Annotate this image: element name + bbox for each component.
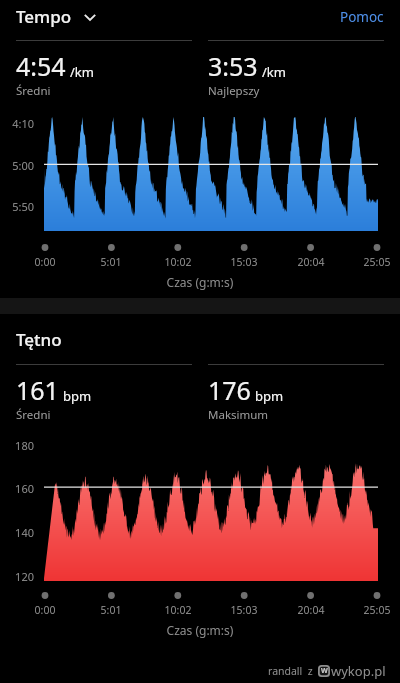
staticText: bpm (63, 387, 92, 405)
staticText: 161 (16, 373, 59, 407)
staticText: Średni (16, 83, 51, 99)
staticText: 176 (208, 373, 251, 407)
staticText: Maksimum (208, 407, 269, 423)
button[interactable]: 4:54 (16, 40, 192, 99)
staticText: 3:53 (208, 49, 258, 83)
staticText: Średni (16, 407, 51, 423)
staticText: W (321, 666, 328, 676)
staticText: 140 (0, 525, 34, 540)
staticText: Czas (g:m:s) (0, 274, 400, 290)
other: Change metric (82, 9, 98, 25)
staticText: wykop.pl (331, 662, 386, 680)
staticText: 5:50 (0, 199, 34, 214)
staticText: Czas (g:m:s) (0, 622, 400, 638)
button[interactable]: 3:53 (208, 40, 384, 99)
button[interactable]: Tętno (16, 328, 62, 351)
staticText: 4:10 (0, 116, 34, 131)
staticText: 5:01 (85, 255, 137, 269)
staticText: 5:00 (0, 158, 34, 173)
staticText: Pomoc (340, 8, 384, 26)
button[interactable]: Pomoc (340, 8, 384, 26)
button[interactable]: 161 (16, 364, 192, 423)
staticText: 25:05 (351, 255, 400, 269)
staticText: 15:03 (218, 255, 270, 269)
staticText: 20:04 (285, 603, 337, 617)
staticText: randall z (268, 664, 313, 678)
staticText: 25:05 (351, 603, 400, 617)
staticText: 15:03 (218, 603, 270, 617)
staticText: 20:04 (285, 255, 337, 269)
staticText: 0:00 (19, 603, 71, 617)
staticText: 10:02 (152, 255, 204, 269)
staticText: 5:01 (85, 603, 137, 617)
staticText: /km (262, 63, 286, 81)
staticText: Tempo (16, 5, 72, 28)
staticText: 0:00 (19, 255, 71, 269)
staticText: /km (70, 63, 94, 81)
staticText: 180 (0, 438, 34, 453)
staticText: 10:02 (152, 603, 204, 617)
staticText: 4:54 (16, 49, 66, 83)
button[interactable]: 176 (208, 364, 384, 423)
staticText: 120 (0, 569, 34, 584)
staticText: 160 (0, 481, 34, 496)
staticText: Tętno (16, 328, 62, 351)
staticText: Najlepszy (208, 83, 260, 99)
button[interactable]: Tempo (16, 5, 98, 28)
staticText: bpm (255, 387, 284, 405)
